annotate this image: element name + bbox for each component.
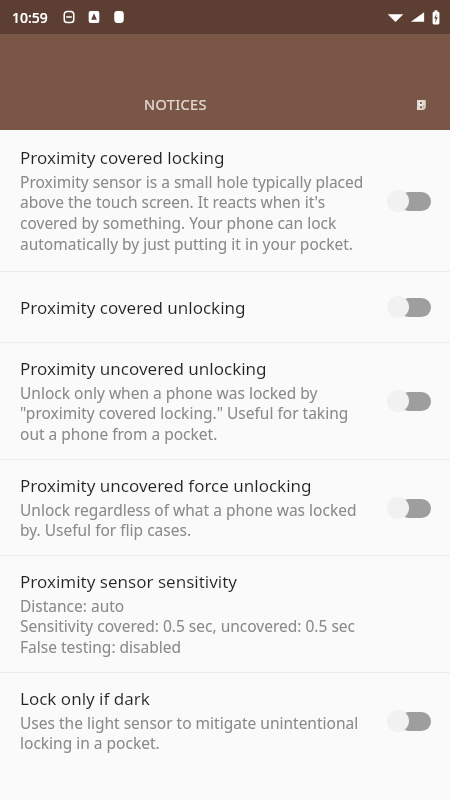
staticText: Proximity sensor is a small hole typical… [20,171,370,255]
button[interactable]: Toggle setting [380,491,436,525]
button[interactable]: Toggle setting [380,704,436,738]
staticText: Proximity sensor sensitivity [20,570,238,593]
staticText: Proximity uncovered unlocking [20,357,267,380]
button[interactable]: Proximity covered unlocking [0,272,450,342]
staticText: Uses the light sensor to mitigate uninte… [20,712,370,754]
button[interactable]: Toggle setting [380,384,436,418]
button[interactable]: Lock only if dark [0,673,450,768]
button[interactable]: Proximity uncovered force unlocking [0,460,450,555]
button[interactable]: Proximity covered locking [0,130,450,271]
staticText: 10:59 [12,8,48,27]
staticText: Distance: auto Sensitivity covered: 0.5 … [20,595,355,658]
button[interactable]: Proximity sensor sensitivity [0,556,450,672]
button[interactable]: Toggle setting [380,184,436,218]
staticText: Unlock only when a phone was locked by "… [20,382,370,445]
staticText: Proximity covered unlocking [20,296,246,319]
staticText: Lock only if dark [20,687,150,710]
staticText: Proximity covered locking [20,146,225,169]
button[interactable]: NOTICES [0,94,400,130]
staticText: Proximity uncovered force unlocking [20,474,312,497]
button[interactable]: Proximity uncovered unlocking [0,343,450,459]
staticText: NOTICES [144,94,207,114]
staticText: Unlock regardless of what a phone was lo… [20,499,370,541]
button[interactable]: Toggle setting [380,290,436,324]
